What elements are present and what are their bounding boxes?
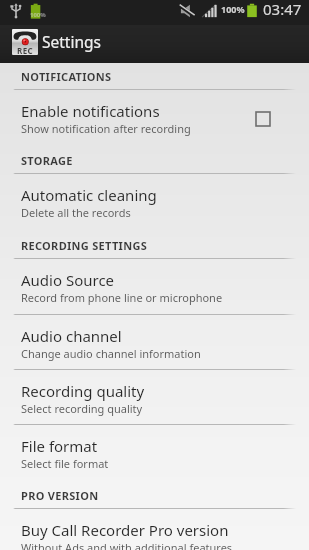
button[interactable]: Recording quality bbox=[0, 370, 309, 424]
staticText: REC bbox=[17, 45, 34, 55]
staticText: PRO VERSION bbox=[21, 488, 99, 503]
staticText: Select file format bbox=[21, 456, 109, 471]
button[interactable]: Automatic cleaning bbox=[0, 174, 309, 228]
staticText: Show notification after recording bbox=[21, 121, 191, 136]
staticText: 100% bbox=[221, 3, 245, 15]
staticText: Enable notifications bbox=[21, 101, 160, 121]
button[interactable]: Call Recorder home bbox=[12, 29, 38, 55]
button[interactable]: File format bbox=[0, 425, 309, 479]
staticText: Buy Call Recorder Pro version bbox=[21, 520, 229, 540]
staticText: RECORDING SETTINGS bbox=[21, 238, 148, 253]
staticText: Audio channel bbox=[21, 326, 122, 346]
staticText: STORAGE bbox=[21, 153, 73, 168]
button[interactable]: Enable notifications checkbox bbox=[256, 112, 270, 126]
staticText: Select recording quality bbox=[21, 401, 143, 416]
button[interactable]: Audio channel bbox=[0, 315, 309, 369]
staticText: File format bbox=[21, 436, 98, 456]
button[interactable]: Buy Call Recorder Pro version bbox=[0, 509, 309, 550]
staticText: Recording quality bbox=[21, 381, 145, 401]
button[interactable]: Audio Source bbox=[0, 259, 309, 313]
staticText: Record from phone line or microphone bbox=[21, 290, 223, 305]
staticText: Settings bbox=[42, 31, 101, 52]
staticText: Change audio channel information bbox=[21, 346, 201, 361]
staticText: NOTIFICATIONS bbox=[21, 69, 112, 84]
staticText: 03:47 bbox=[263, 0, 302, 19]
staticText: Automatic cleaning bbox=[21, 185, 157, 205]
staticText: Audio Source bbox=[21, 270, 115, 290]
staticText: 100% bbox=[30, 11, 46, 19]
button[interactable]: Enable notifications bbox=[0, 90, 309, 144]
staticText: Without Ads and with additional features bbox=[21, 540, 233, 550]
staticText: Delete all the records bbox=[21, 205, 131, 220]
